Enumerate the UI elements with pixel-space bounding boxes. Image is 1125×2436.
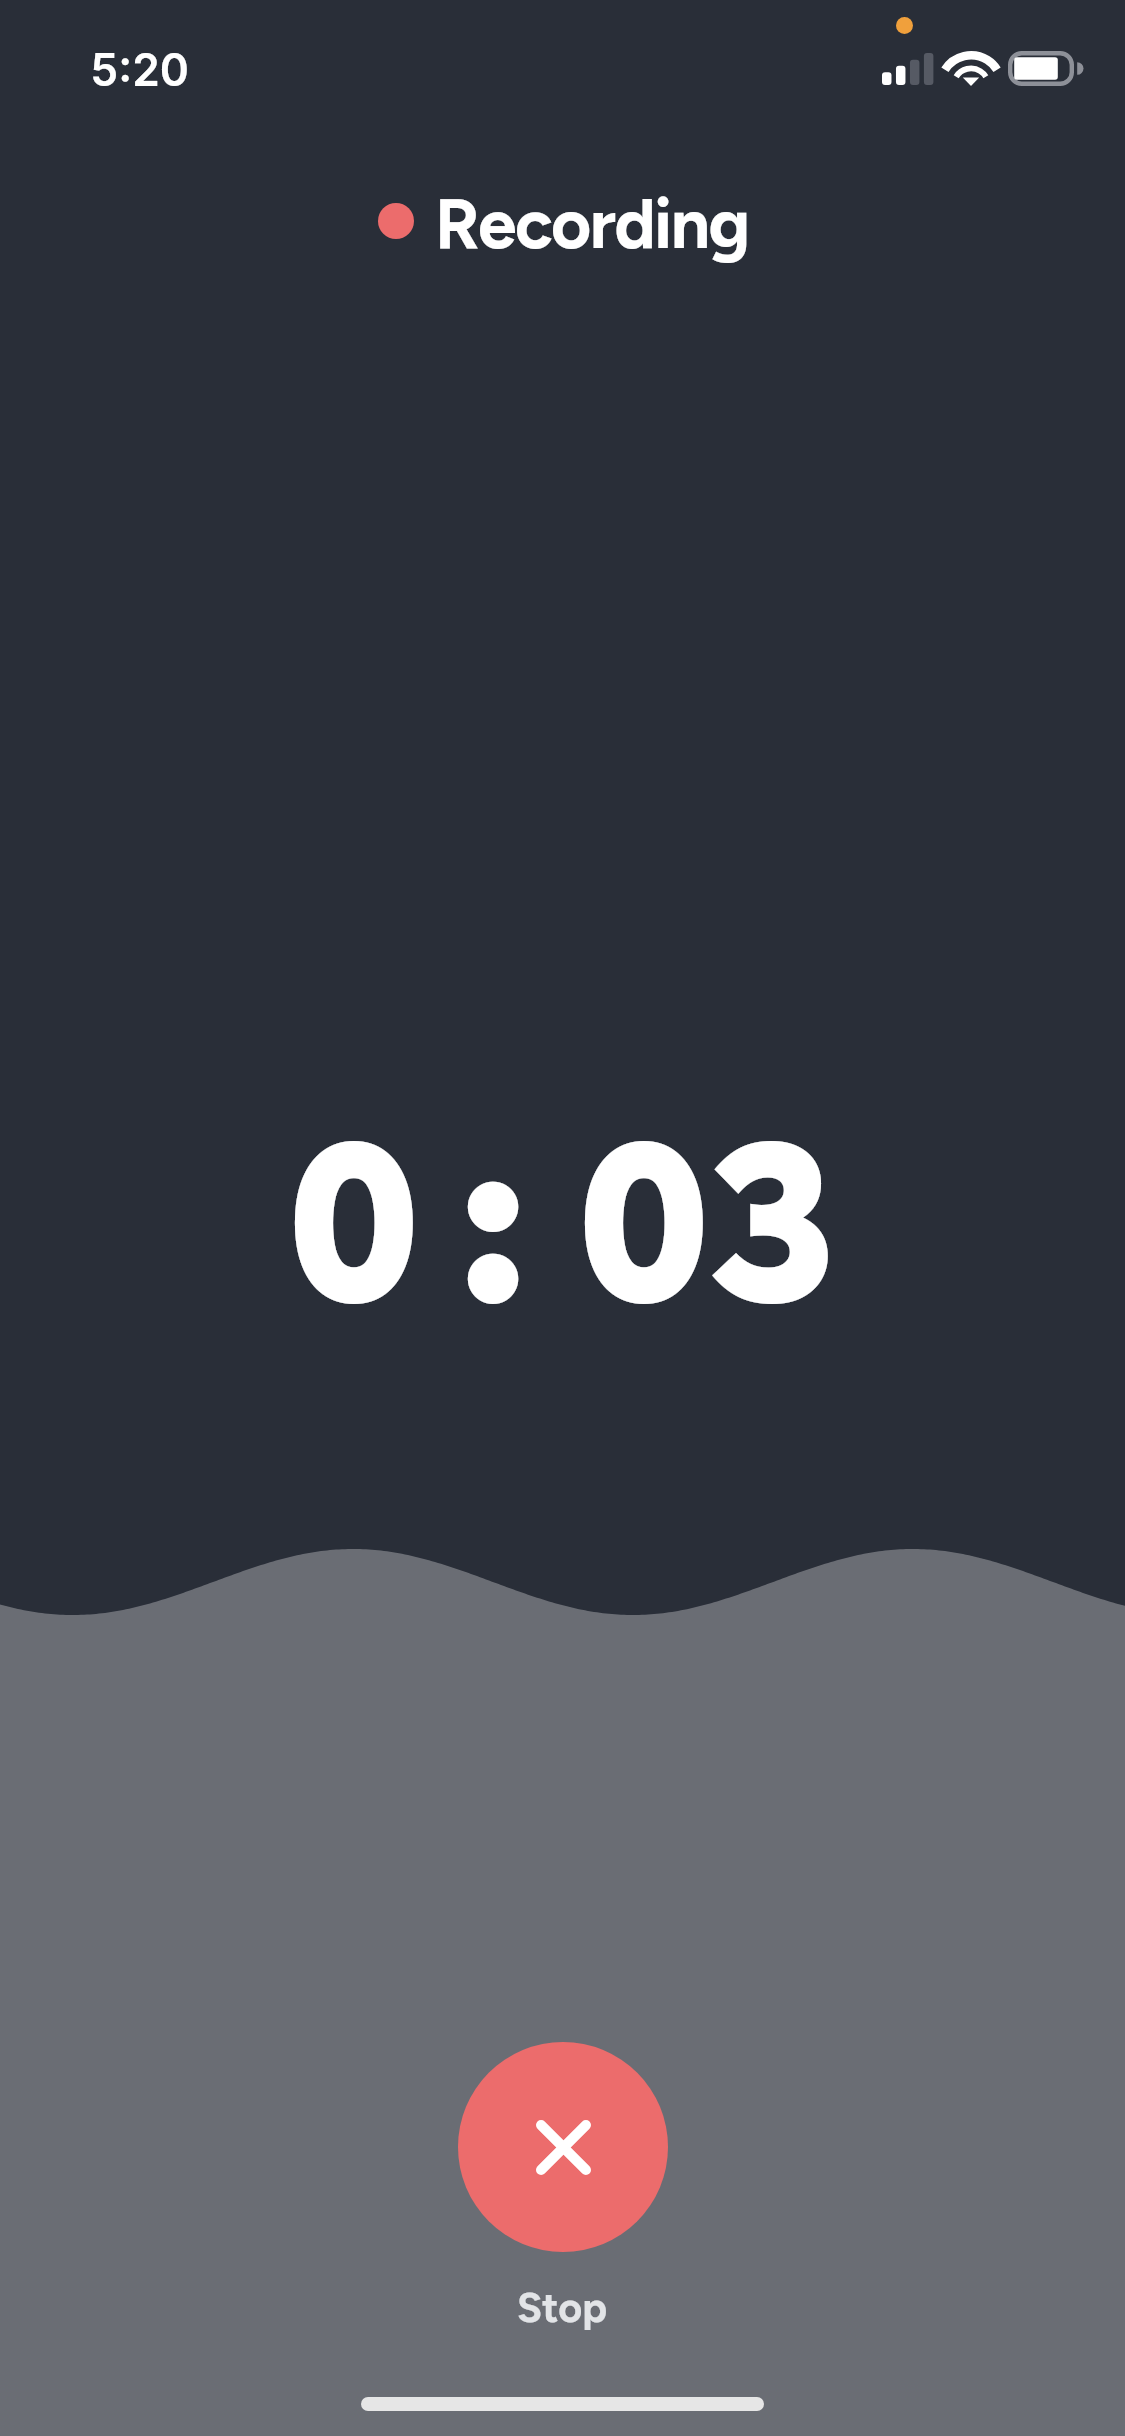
staticText: 5:20 — [91, 43, 189, 96]
staticText: 3 — [709, 1084, 835, 1361]
staticText: Stop — [517, 2283, 608, 2333]
staticText: 0 — [578, 1084, 710, 1361]
staticText: 0 — [288, 1084, 420, 1361]
staticText: : — [460, 1084, 527, 1361]
staticText: Recording — [435, 182, 749, 265]
button[interactable]: Stop recording — [458, 2042, 668, 2252]
